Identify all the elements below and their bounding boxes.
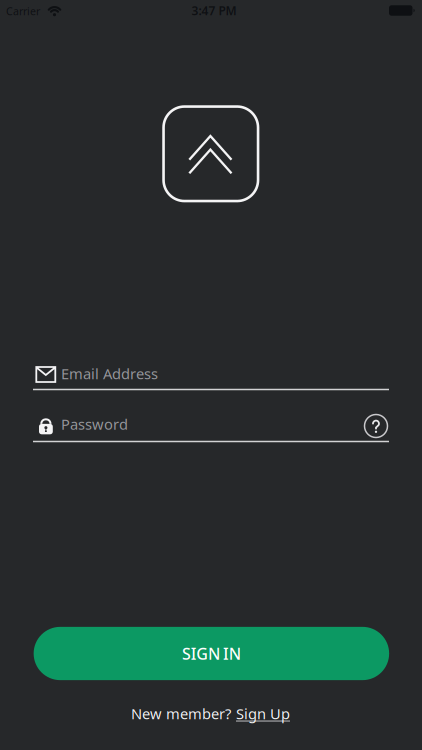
button[interactable]: Sign Up	[236, 704, 290, 723]
staticText: Password	[61, 414, 128, 434]
staticText: New member?	[131, 704, 231, 723]
button[interactable]: SIGN IN	[34, 627, 389, 680]
button[interactable]: Password help	[363, 413, 389, 439]
button[interactable]: Password	[33, 406, 389, 442]
staticText: Email Address	[61, 364, 158, 383]
staticText: SIGN IN	[182, 643, 241, 664]
staticText: 3:47 PM	[191, 2, 236, 18]
staticText: Sign Up	[236, 704, 290, 723]
button[interactable]: Email Address	[33, 355, 389, 391]
staticText: Carrier	[6, 4, 40, 18]
